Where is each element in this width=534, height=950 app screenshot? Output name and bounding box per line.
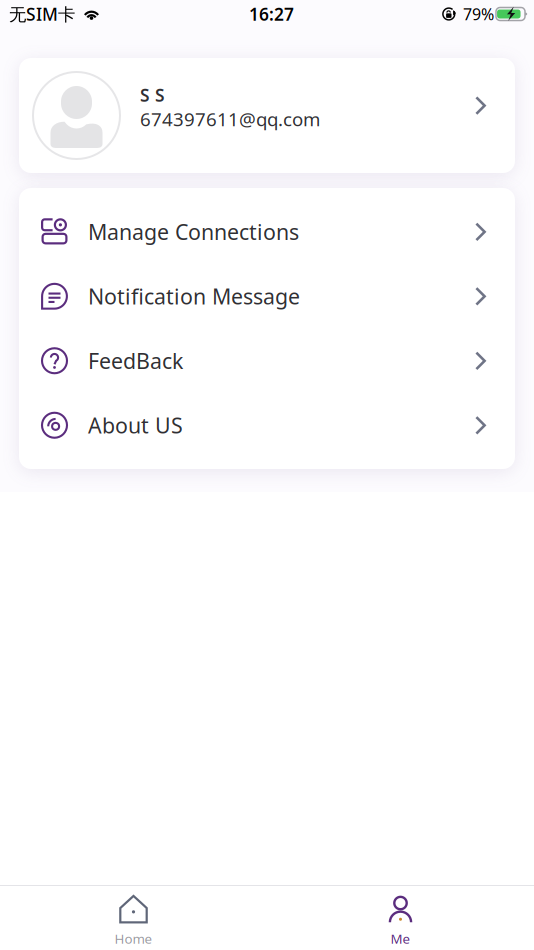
staticText: About US bbox=[88, 411, 183, 439]
button[interactable]: Manage Connections bbox=[19, 199, 515, 264]
staticText: 79% bbox=[463, 3, 494, 25]
staticText: Manage Connections bbox=[88, 218, 299, 246]
button[interactable]: Notification Message bbox=[19, 264, 515, 328]
button[interactable]: FeedBack bbox=[19, 328, 515, 393]
staticText: FeedBack bbox=[88, 347, 183, 375]
staticText: S S bbox=[140, 84, 165, 107]
staticText: Notification Message bbox=[88, 282, 300, 310]
staticText: Me bbox=[390, 930, 410, 947]
staticText: Home bbox=[114, 930, 152, 947]
staticText: 16:27 bbox=[249, 2, 294, 25]
staticText: 无SIM卡 bbox=[9, 2, 75, 25]
button[interactable]: About US bbox=[19, 393, 515, 457]
button[interactable]: Me bbox=[267, 886, 534, 950]
staticText: 674397611@qq.com bbox=[140, 107, 320, 131]
button[interactable]: Home bbox=[0, 886, 267, 950]
button[interactable]: S S bbox=[19, 58, 515, 173]
